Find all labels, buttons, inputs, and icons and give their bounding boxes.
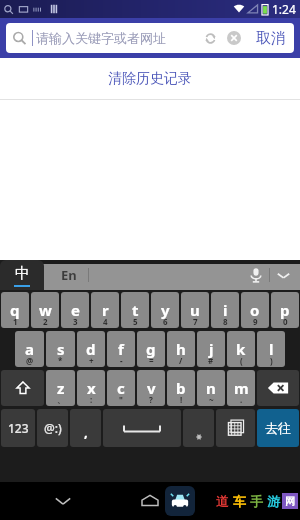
button[interactable]: e	[61, 292, 89, 328]
staticText: e	[71, 300, 80, 320]
button[interactable]: 清除	[222, 26, 246, 50]
staticText: 清除历史记录	[108, 70, 192, 88]
staticText: r	[102, 300, 109, 320]
staticText: 6	[163, 316, 168, 327]
staticText: u	[190, 300, 200, 320]
staticText: m	[234, 378, 249, 398]
button[interactable]: m	[227, 370, 255, 406]
button[interactable]: Shift	[1, 370, 44, 406]
staticText: y	[161, 300, 170, 320]
button[interactable]: d	[77, 331, 105, 367]
staticText: z	[57, 378, 65, 398]
button[interactable]: f	[107, 331, 135, 367]
staticText: 网	[285, 495, 295, 508]
button[interactable]: 去往	[257, 409, 299, 447]
button[interactable]: a	[15, 331, 44, 367]
staticText: i	[223, 300, 228, 320]
staticText: 道	[216, 493, 229, 509]
button[interactable]: 刷新	[198, 26, 222, 50]
staticText: (	[240, 355, 243, 366]
button[interactable]: 主页	[133, 484, 167, 518]
button[interactable]: v	[137, 370, 165, 406]
button[interactable]: 123	[1, 409, 35, 447]
button[interactable]: 收起键盘	[270, 262, 296, 288]
staticText: 5	[133, 316, 138, 327]
button[interactable]: h	[167, 331, 195, 367]
staticText: v	[147, 378, 156, 398]
staticText: s	[57, 339, 65, 359]
staticText: ?	[149, 394, 153, 405]
staticText: 7	[193, 316, 198, 327]
staticText: /	[179, 355, 183, 366]
staticText: 去往	[265, 420, 291, 436]
staticText: j	[209, 339, 214, 359]
button[interactable]: 语音输入	[243, 262, 269, 288]
button[interactable]: q	[1, 292, 29, 328]
button[interactable]: 中	[0, 260, 44, 290]
button[interactable]: En	[52, 260, 86, 290]
button[interactable]: x	[77, 370, 105, 406]
staticText: 8	[223, 316, 228, 327]
button[interactable]: l	[257, 331, 285, 367]
staticText: o	[250, 300, 260, 320]
button[interactable]: p	[271, 292, 299, 328]
staticText: 1	[13, 316, 18, 327]
staticText: q	[10, 300, 20, 320]
staticText: 游	[267, 493, 280, 509]
button[interactable]: 更多输入法	[216, 409, 255, 447]
staticText: x	[87, 378, 96, 398]
staticText: )	[270, 355, 273, 366]
button[interactable]: 空格	[103, 409, 181, 447]
button[interactable]: 退格	[257, 370, 299, 406]
staticText: 123	[8, 420, 29, 436]
staticText: !	[180, 394, 183, 405]
staticText: -	[120, 355, 123, 366]
button[interactable]: w	[31, 292, 59, 328]
staticText: "	[119, 394, 123, 405]
staticText: :	[90, 394, 93, 405]
button[interactable]: k	[227, 331, 255, 367]
button[interactable]: u	[181, 292, 209, 328]
button[interactable]: 设置	[183, 409, 214, 447]
button[interactable]: @:)	[37, 409, 68, 447]
staticText: w	[39, 300, 52, 320]
button[interactable]: r	[91, 292, 119, 328]
staticText: 2	[43, 316, 48, 327]
staticText: =	[149, 355, 154, 366]
button[interactable]: n	[197, 370, 225, 406]
staticText: 手	[250, 493, 263, 509]
staticText: .	[240, 394, 243, 405]
staticText: @	[26, 355, 34, 366]
staticText: t	[132, 300, 139, 320]
button[interactable]: y	[151, 292, 179, 328]
button[interactable]: b	[167, 370, 195, 406]
button[interactable]: z	[46, 370, 75, 406]
staticText: 车	[233, 493, 246, 509]
staticText: 0	[283, 316, 288, 327]
button[interactable]: 清除历史记录	[0, 58, 300, 100]
staticText: g	[146, 339, 156, 359]
button[interactable]: g	[137, 331, 165, 367]
staticText: ~	[209, 394, 214, 405]
button[interactable]: ,	[70, 409, 101, 447]
staticText: En	[61, 266, 77, 284]
staticText: 1:24	[272, 1, 296, 17]
staticText: k	[236, 339, 246, 359]
button[interactable]: 最近应用	[165, 486, 195, 516]
staticText: +	[89, 355, 94, 366]
staticText: d	[86, 339, 96, 359]
staticText: 请输入关键字或者网址	[36, 30, 166, 46]
staticText: a	[25, 339, 34, 359]
button[interactable]: t	[121, 292, 149, 328]
button[interactable]: j	[197, 331, 225, 367]
button[interactable]: 返回	[46, 484, 80, 518]
button[interactable]: s	[46, 331, 75, 367]
staticText: f	[118, 339, 124, 359]
button[interactable]: c	[107, 370, 135, 406]
staticText: b	[176, 378, 186, 398]
button[interactable]: o	[241, 292, 269, 328]
staticText: 中	[15, 264, 30, 283]
button[interactable]: i	[211, 292, 239, 328]
staticText: *	[58, 355, 63, 366]
button[interactable]: 取消	[248, 23, 294, 53]
